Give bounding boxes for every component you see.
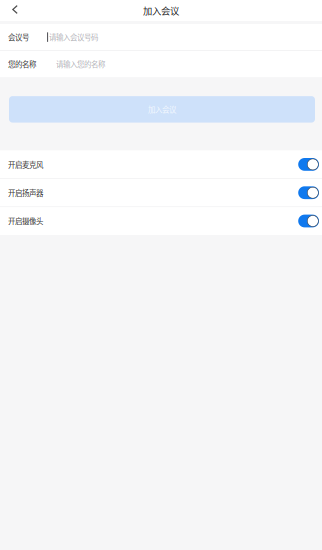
staticText: 加入会议 (143, 4, 179, 17)
button[interactable]: 加入会议 (9, 96, 315, 123)
staticText: 加入会议 (148, 104, 176, 115)
staticText: 会议号 (8, 32, 29, 42)
staticText: 请输入会议号码 (49, 32, 98, 42)
button[interactable]: 开启麦克风 (0, 151, 322, 178)
button[interactable]: 开启扬声器 (0, 179, 322, 206)
staticText: 开启摄像头 (8, 216, 43, 226)
staticText: 您的名称 (8, 59, 36, 69)
staticText: 开启扬声器 (8, 187, 43, 198)
button[interactable]: 开启摄像头 (0, 207, 322, 235)
button[interactable]: 返回 (0, 0, 30, 21)
staticText: 开启麦克风 (8, 159, 43, 170)
staticText: 请输入您的名称 (56, 59, 105, 69)
